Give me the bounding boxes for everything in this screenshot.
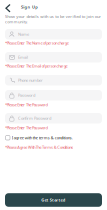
staticText: community. [5,19,28,24]
button[interactable]: I agree with the terms & conditions. [5,135,102,141]
staticText: Get Started [41,197,66,203]
button[interactable]: Email [5,52,102,62]
staticText: *Please Enter The Password [5,125,47,130]
staticText: Phone number [18,78,43,83]
button[interactable]: Get Started [5,193,102,207]
staticText: Show your details with us to be verified… [5,14,101,19]
button[interactable]: Name [5,29,102,39]
staticText: I agree with the terms & conditions. [12,135,73,140]
staticText: *Please Enter The Name of person charge [5,40,69,46]
button[interactable]: Back [1,1,14,15]
staticText: *Please Enter The Email of person charge [5,63,67,69]
staticText: *Please Agree With The Terms & Condition… [5,144,73,150]
button[interactable]: Phone number [5,75,102,85]
staticText: Email [18,55,28,60]
staticText: Confirm Password [18,116,51,121]
button[interactable]: Confirm Password [5,113,102,123]
staticText: Sign Up [21,4,38,9]
staticText: Password [18,93,35,98]
staticText: Name [18,32,29,37]
button[interactable]: Password [5,90,102,100]
staticText: *Please Enter The Password [5,102,47,107]
